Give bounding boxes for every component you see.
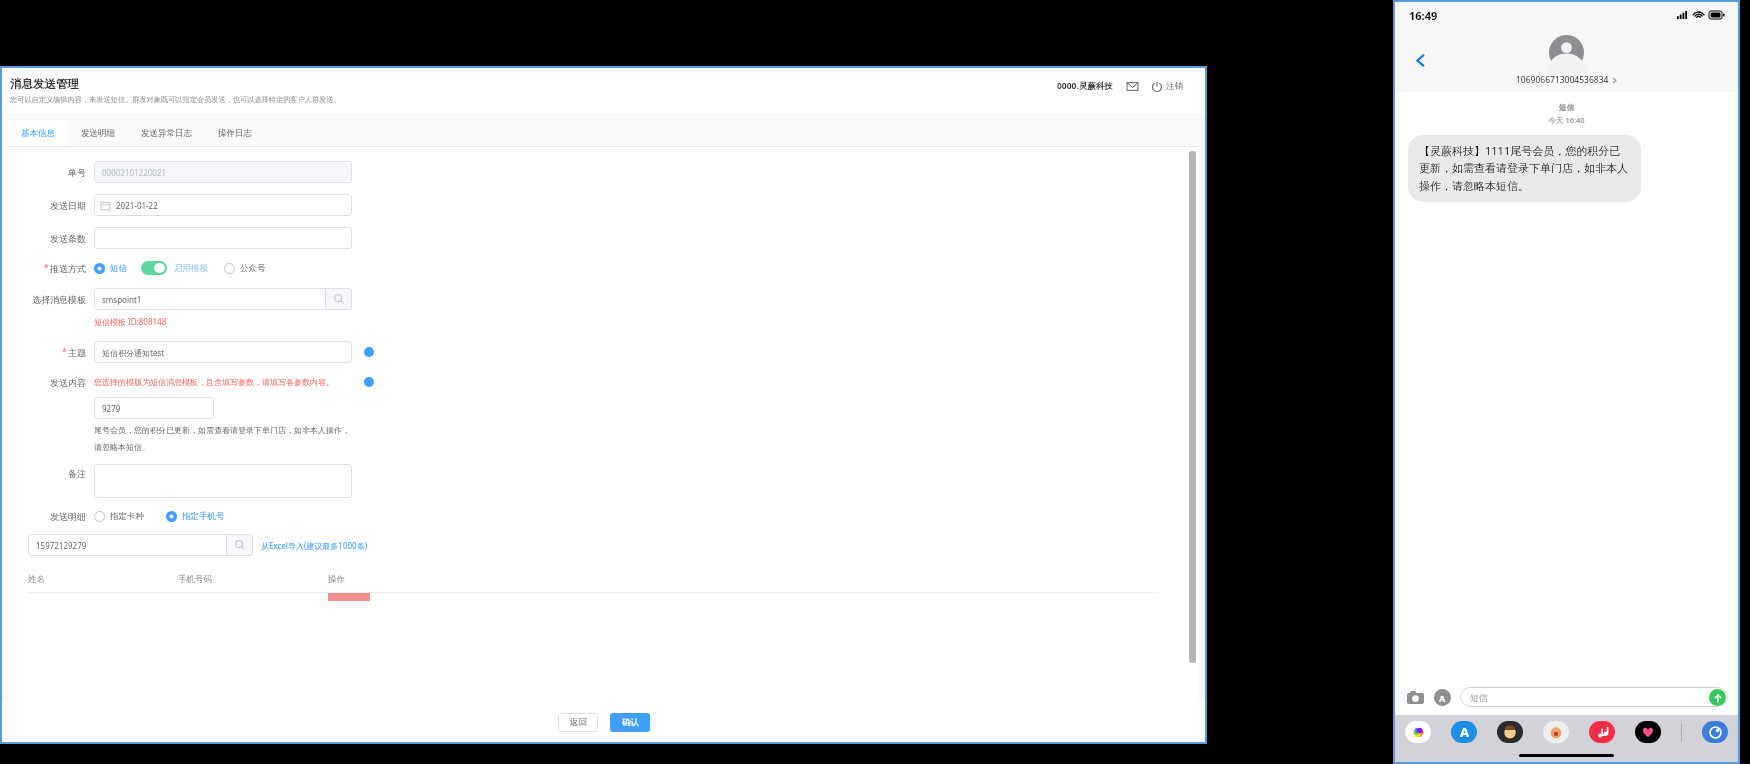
staticText: 发送条数 — [50, 233, 86, 244]
button[interactable]: 基本信息 — [21, 120, 55, 146]
staticText: 从Excel导入(建议最多1000条) — [261, 540, 368, 551]
staticText: 指定卡种 — [110, 511, 144, 522]
staticText: 16:49 — [1409, 8, 1438, 23]
button[interactable]: 短信 — [94, 263, 127, 274]
button[interactable]: 15972129279 — [28, 534, 226, 556]
staticText: 手机号码 — [178, 574, 328, 585]
button[interactable] — [94, 464, 352, 498]
staticText: 返回 — [570, 717, 587, 728]
staticText: 指定手机号 — [182, 511, 225, 522]
button[interactable]: 短信 — [1460, 687, 1728, 707]
staticText: 今天 16:40 — [1395, 115, 1738, 125]
staticText: 00002101220021 — [102, 167, 167, 178]
staticText: 发送明细 — [50, 511, 86, 522]
staticText: 操作 — [328, 574, 345, 585]
button[interactable]: App Store — [1434, 689, 1451, 706]
staticText: * — [44, 262, 49, 274]
button[interactable]: 00002101220021 — [94, 161, 352, 183]
staticText: * — [62, 346, 67, 358]
button[interactable]: 从Excel导入(建议最多1000条) — [261, 540, 368, 551]
button[interactable]: Back — [1407, 47, 1433, 73]
staticText: 主题 — [68, 347, 86, 358]
staticText: 1069066713004536834 — [1516, 74, 1609, 86]
button[interactable]: Camera — [1405, 687, 1425, 707]
button[interactable]: 指定手机号 — [166, 511, 225, 522]
staticText: 发送明细 — [81, 128, 115, 139]
staticText: 您可以自定义编辑内容，来发送短信。群发对象既可以指定会员发送，也可以选择特定的客… — [10, 95, 341, 104]
button[interactable]: 操作日志 — [218, 120, 252, 146]
button[interactable]: Search — [326, 288, 352, 310]
button[interactable]: App — [1702, 721, 1728, 743]
button[interactable] — [94, 227, 352, 249]
staticText: 姓名 — [28, 574, 178, 585]
button[interactable]: 9279 — [94, 397, 214, 419]
staticText: 15972129279 — [36, 540, 87, 551]
staticText: A — [1460, 723, 1469, 741]
button[interactable]: 发送异常日志 — [141, 120, 192, 146]
button[interactable]: 返回 — [558, 713, 598, 732]
staticText: 短信 — [1395, 103, 1738, 112]
button[interactable]: 注销 — [1152, 81, 1183, 92]
button[interactable]: Messages — [1127, 81, 1138, 92]
button[interactable]: Send — [1709, 689, 1726, 706]
staticText: 0000.灵蕨科技 — [1057, 80, 1113, 92]
staticText: 发送日期 — [50, 200, 86, 211]
staticText: 2021-01-22 — [116, 200, 158, 211]
button[interactable]: 短信积分通知test — [94, 341, 352, 363]
staticText: 注销 — [1166, 81, 1183, 92]
staticText: 选择消息模板 — [32, 294, 86, 305]
staticText: 短信积分通知test — [102, 347, 165, 358]
button[interactable]: 发送明细 — [81, 120, 115, 146]
staticText: 消息发送管理 — [10, 77, 79, 91]
button[interactable]: App — [1635, 721, 1661, 743]
button[interactable]: 指定卡种 — [94, 511, 144, 522]
button[interactable]: App — [1497, 721, 1523, 743]
staticText: 公众号 — [240, 263, 266, 274]
button[interactable]: 公众号 — [224, 263, 266, 274]
staticText: 备注 — [68, 468, 86, 479]
staticText: 基本信息 — [21, 128, 55, 139]
button[interactable] — [141, 261, 167, 275]
button[interactable]: Search — [227, 534, 253, 556]
button[interactable]: App — [1405, 721, 1431, 743]
staticText: 您选择的模版为短信消息模板，且含填写参数，请填写各参数内容。 — [94, 377, 352, 387]
staticText: 确认 — [622, 717, 639, 728]
button[interactable]: smspoint1 — [94, 288, 325, 310]
staticText: 短信模板 ID:808148 — [94, 316, 167, 327]
staticText: 短信 — [1470, 692, 1488, 703]
staticText: 发送异常日志 — [141, 128, 192, 139]
staticText: 推送方式 — [50, 263, 86, 274]
staticText: 启用模板 — [174, 263, 208, 274]
button[interactable]: App — [1543, 721, 1569, 743]
button[interactable]: App — [1451, 721, 1477, 743]
staticText: 操作日志 — [218, 128, 252, 139]
staticText: 【灵蕨科技】1111尾号会员，您的积分已更新，如需查看请登录下单门店，如非本人操… — [1419, 143, 1630, 194]
button[interactable]: 确认 — [610, 713, 650, 732]
staticText: 9279 — [102, 403, 121, 414]
staticText: 发送内容 — [50, 377, 86, 388]
staticText: 单号 — [68, 167, 86, 178]
staticText: 尾号会员，您的积分已更新，如需查看请登录下单门店，如非本人操作，请忽略本短信。 — [94, 425, 352, 452]
button[interactable]: App — [1589, 721, 1615, 743]
button[interactable]: 2021-01-22 — [94, 194, 352, 216]
staticText: 短信 — [110, 263, 127, 274]
staticText: A — [1439, 692, 1446, 704]
staticText: smspoint1 — [102, 294, 142, 305]
